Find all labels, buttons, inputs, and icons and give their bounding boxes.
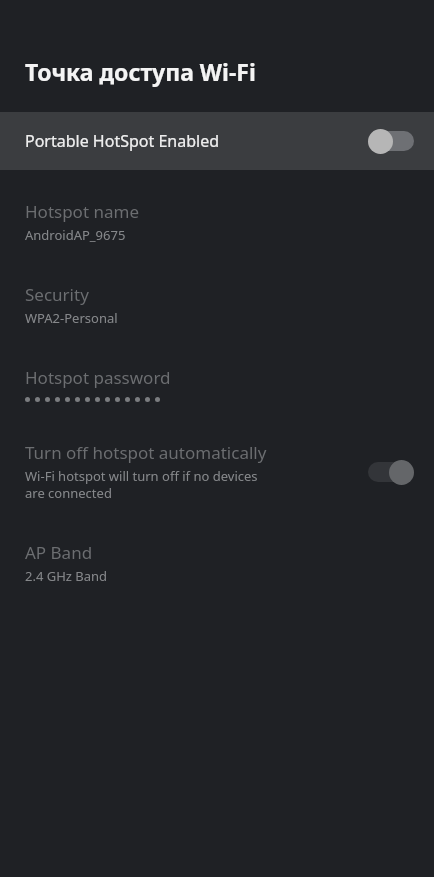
button[interactable]: Turn off hotspot automatically (0, 428, 434, 515)
staticText: Wi-Fi hotspot will turn off if no device… (25, 467, 275, 502)
staticText: Hotspot name (25, 200, 139, 223)
staticText: Security (25, 283, 89, 306)
staticText: AndroidAP_9675 (25, 226, 126, 244)
staticText: WPA2-Personal (25, 309, 118, 327)
button[interactable]: Portable HotSpot Enabled (0, 112, 434, 170)
staticText: Turn off hotspot automatically (25, 441, 267, 464)
button[interactable]: Hotspot name (0, 187, 434, 257)
staticText: Hotspot password (25, 366, 171, 389)
button[interactable]: AP Band (0, 528, 434, 598)
staticText: AP Band (25, 541, 93, 564)
other: Toggle portable hotspot (368, 128, 414, 154)
staticText: Точка доступа Wi-Fi (25, 56, 256, 87)
button[interactable]: Security (0, 270, 434, 340)
button[interactable]: Hotspot password (0, 353, 434, 415)
staticText: Portable HotSpot Enabled (25, 130, 368, 152)
staticText: 2.4 GHz Band (25, 567, 108, 585)
other: Toggle turn off hotspot automatically (368, 459, 414, 485)
